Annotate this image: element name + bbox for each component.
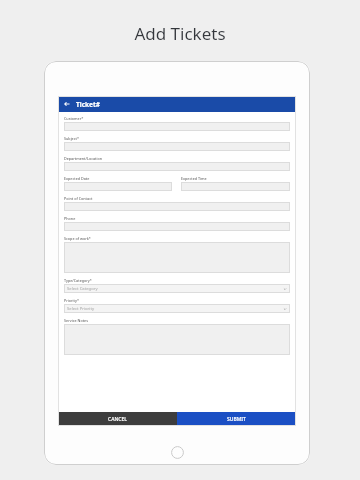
button[interactable] bbox=[64, 324, 290, 355]
staticText: Customer* bbox=[64, 116, 84, 121]
button[interactable]: Select Category bbox=[64, 284, 290, 293]
button[interactable]: Back bbox=[58, 96, 296, 112]
staticText: SUBMIT bbox=[227, 416, 246, 423]
staticText: Select Priority bbox=[67, 306, 95, 312]
staticText: Service Notes bbox=[64, 318, 88, 323]
button[interactable]: Home bbox=[171, 446, 184, 459]
staticText: Expected Time bbox=[181, 176, 207, 181]
button[interactable] bbox=[64, 222, 290, 231]
staticText: Scope of work* bbox=[64, 236, 91, 241]
staticText: Add Tickets bbox=[134, 22, 226, 45]
button[interactable] bbox=[64, 182, 172, 191]
staticText: Select Category bbox=[67, 286, 98, 292]
staticText: Department/Location bbox=[64, 156, 103, 161]
button[interactable] bbox=[64, 202, 290, 211]
button[interactable]: Select Priority bbox=[64, 304, 290, 313]
staticText: Ticket# bbox=[76, 100, 100, 109]
button[interactable]: CANCEL bbox=[58, 412, 177, 426]
staticText: Subject* bbox=[64, 136, 79, 141]
staticText: Priority* bbox=[64, 298, 79, 303]
button[interactable] bbox=[64, 162, 290, 171]
staticText: CANCEL bbox=[108, 416, 127, 423]
staticText: Type/Category* bbox=[64, 278, 92, 283]
staticText: Phone bbox=[64, 216, 76, 221]
button[interactable]: SUBMIT bbox=[177, 412, 296, 426]
button[interactable]: Back bbox=[63, 100, 71, 108]
staticText: Point of Contact bbox=[64, 196, 93, 201]
button[interactable] bbox=[64, 142, 290, 151]
button[interactable] bbox=[181, 182, 290, 191]
button[interactable] bbox=[64, 122, 290, 131]
staticText: Expected Date bbox=[64, 176, 90, 181]
button[interactable] bbox=[64, 242, 290, 273]
